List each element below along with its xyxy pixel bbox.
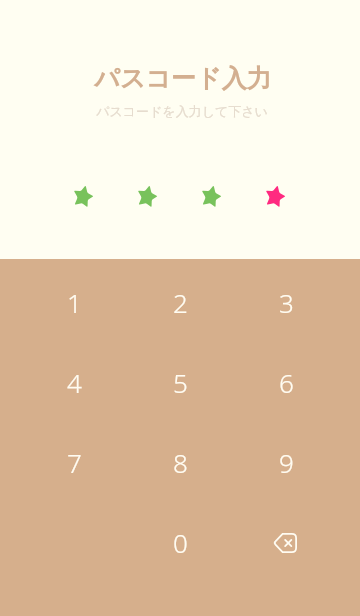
button[interactable]: Backspace <box>233 502 339 582</box>
button[interactable]: 4 <box>21 342 127 422</box>
button[interactable]: 5 <box>127 342 233 422</box>
staticText: 9 <box>279 445 294 480</box>
staticText: 0 <box>173 525 188 560</box>
staticText: 6 <box>279 365 294 400</box>
button[interactable]: 0 <box>127 502 233 582</box>
staticText: 1 <box>67 285 82 320</box>
staticText: 7 <box>67 445 82 480</box>
button[interactable]: 2 <box>127 262 233 342</box>
staticText: パスコード入力 <box>94 63 272 94</box>
button[interactable]: 3 <box>233 262 339 342</box>
staticText: 3 <box>279 285 294 320</box>
button[interactable]: 1 <box>21 262 127 342</box>
staticText: 4 <box>67 365 82 400</box>
button[interactable]: 6 <box>233 342 339 422</box>
button[interactable]: 7 <box>21 422 127 502</box>
staticText: パスコードを入力して下さい <box>96 103 268 119</box>
staticText: 5 <box>173 365 188 400</box>
staticText: 2 <box>173 285 188 320</box>
button[interactable]: 9 <box>233 422 339 502</box>
button[interactable]: 8 <box>127 422 233 502</box>
staticText: 8 <box>173 445 188 480</box>
